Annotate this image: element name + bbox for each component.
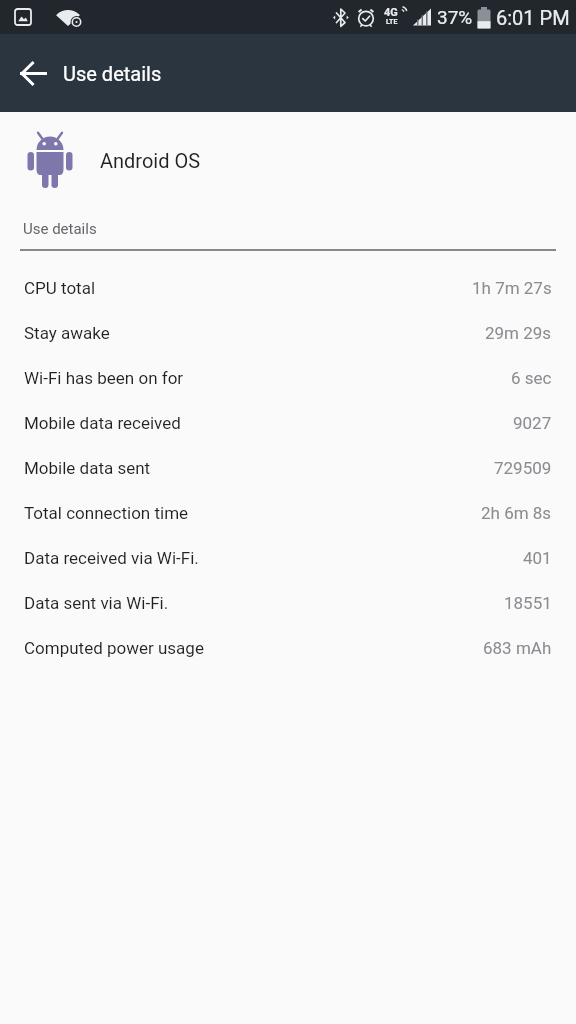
staticText: 6:01 PM	[496, 6, 570, 29]
staticText: Data received via Wi-Fi.	[24, 548, 199, 568]
staticText: Mobile data received	[24, 413, 181, 433]
staticText: Wi-Fi has been on for	[24, 368, 184, 388]
staticText: Stay awake	[24, 323, 110, 343]
staticText: Total connection time	[24, 503, 189, 523]
staticText: Use details	[23, 220, 97, 238]
staticText: Mobile data sent	[24, 458, 151, 478]
button[interactable]: Mobile data received	[0, 400, 576, 445]
button[interactable]: Wi-Fi has been on for	[0, 355, 576, 400]
button[interactable]: Data sent via Wi-Fi.	[0, 580, 576, 625]
button[interactable]: Total connection time	[0, 490, 576, 535]
staticText: CPU total	[24, 278, 96, 298]
staticText: 1h 7m 27s	[472, 278, 552, 298]
staticText: Use details	[63, 62, 162, 85]
staticText: 29m 29s	[485, 323, 552, 343]
staticText: Computed power usage	[24, 638, 204, 658]
staticText: 9027	[513, 413, 552, 433]
staticText: 401	[523, 548, 552, 568]
staticText: 729509	[494, 458, 552, 478]
button[interactable]	[9, 49, 57, 97]
staticText: 6 sec	[511, 368, 552, 388]
staticText: LTE	[386, 18, 398, 26]
staticText: 4G	[384, 6, 398, 19]
button[interactable]: Stay awake	[0, 310, 576, 355]
staticText: Data sent via Wi-Fi.	[24, 593, 169, 613]
staticText: Android OS	[100, 149, 201, 172]
button[interactable]: Computed power usage	[0, 625, 576, 670]
staticText: 683 mAh	[483, 638, 552, 658]
button[interactable]: Data received via Wi-Fi.	[0, 535, 576, 580]
button[interactable]: Mobile data sent	[0, 445, 576, 490]
button[interactable]: CPU total	[0, 265, 576, 310]
staticText: 18551	[504, 593, 552, 613]
staticText: 37%	[437, 6, 473, 28]
staticText: 2h 6m 8s	[481, 503, 552, 523]
